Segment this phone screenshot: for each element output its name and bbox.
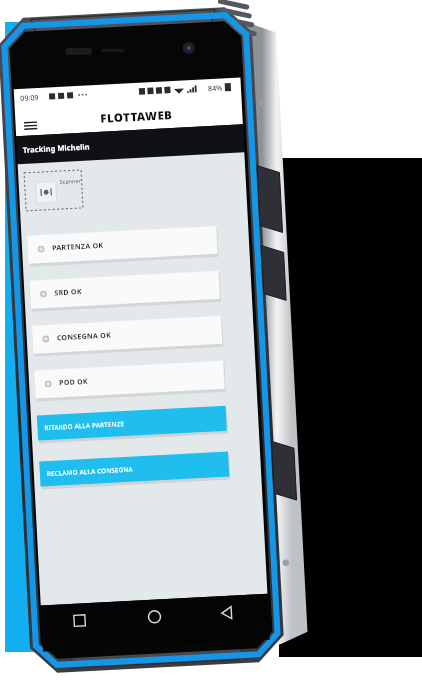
button[interactable]: CONSEGNA OK (33, 320, 222, 348)
button[interactable]: Recents (52, 607, 78, 629)
button[interactable]: SRD OK (33, 275, 222, 303)
button[interactable]: Menu (33, 110, 53, 128)
button[interactable]: RITARDO ALLA PARTENZE (33, 410, 222, 435)
button[interactable]: Scanner (33, 167, 90, 205)
button[interactable]: Back (201, 607, 227, 629)
button[interactable]: RECLAMO ALLA CONSEGNA (33, 456, 222, 481)
button[interactable]: PARTENZA OK (33, 230, 222, 258)
button[interactable]: Home (127, 605, 153, 629)
button[interactable]: POD OK (33, 365, 222, 393)
